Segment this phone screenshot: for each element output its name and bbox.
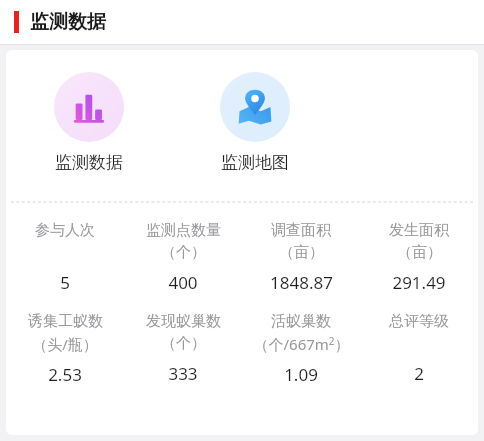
staticText: 活蚁巢数 bbox=[271, 312, 331, 331]
staticText: 发现蚁巢数 bbox=[146, 312, 221, 331]
staticText: 1848.87 bbox=[270, 271, 333, 294]
staticText: 2 bbox=[414, 362, 424, 385]
staticText: 333 bbox=[168, 362, 198, 385]
staticText: （个/667m2） bbox=[253, 334, 350, 354]
staticText: 诱集工蚁数 bbox=[28, 312, 103, 331]
staticText: 5 bbox=[60, 271, 70, 294]
staticText: （个） bbox=[161, 334, 206, 353]
staticText: 2.53 bbox=[48, 363, 82, 386]
button[interactable]: 监测数据 bbox=[20, 72, 157, 173]
staticText: 总评等级 bbox=[389, 312, 449, 331]
staticText: （亩） bbox=[397, 243, 442, 262]
staticText: 监测数据 bbox=[55, 152, 123, 173]
staticText: 监测点数量 bbox=[146, 221, 221, 240]
staticText: （个） bbox=[161, 243, 206, 262]
staticText: 调查面积 bbox=[271, 221, 331, 240]
staticText: 发生面积 bbox=[389, 221, 449, 240]
staticText: 291.49 bbox=[392, 271, 446, 294]
staticText: （头/瓶） bbox=[32, 334, 98, 354]
button[interactable]: 监测地图 bbox=[186, 72, 323, 173]
staticText: 1.09 bbox=[284, 363, 318, 386]
staticText: 监测地图 bbox=[221, 152, 289, 173]
staticText: （亩） bbox=[279, 243, 324, 262]
staticText: 400 bbox=[168, 271, 198, 294]
staticText: 监测数据 bbox=[30, 10, 106, 34]
staticText: 参与人次 bbox=[35, 221, 95, 240]
